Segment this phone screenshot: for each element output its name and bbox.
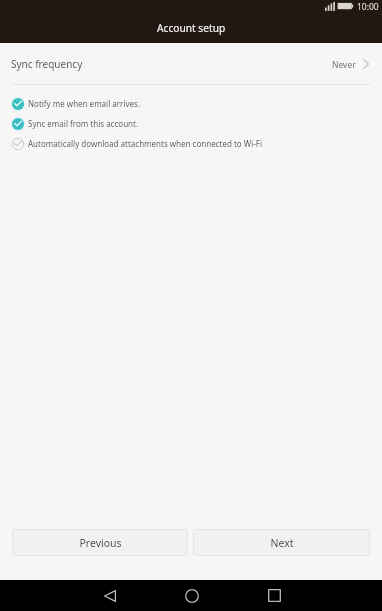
button[interactable]: Home	[172, 580, 212, 611]
button[interactable]: Notify me when email arrives.	[0, 94, 382, 114]
button[interactable]: Back	[90, 580, 130, 611]
staticText: Next	[270, 536, 294, 550]
staticText: Previous	[79, 536, 122, 550]
staticText: Sync frequency	[11, 57, 83, 71]
staticText: Account setup	[157, 21, 226, 35]
staticText: Sync email from this account.	[28, 118, 139, 129]
button[interactable]: Next	[193, 529, 370, 556]
staticText: Notify me when email arrives.	[28, 98, 141, 109]
staticText: Automatically download attachments when …	[28, 138, 263, 149]
button[interactable]: Recent apps	[254, 580, 294, 611]
button[interactable]: Sync frequency	[0, 43, 382, 84]
staticText: Never	[332, 59, 356, 71]
button[interactable]: Automatically download attachments when …	[0, 134, 382, 154]
button[interactable]: Previous	[12, 529, 188, 556]
button[interactable]: Sync email from this account.	[0, 114, 382, 134]
staticText: 10:00	[357, 1, 379, 13]
